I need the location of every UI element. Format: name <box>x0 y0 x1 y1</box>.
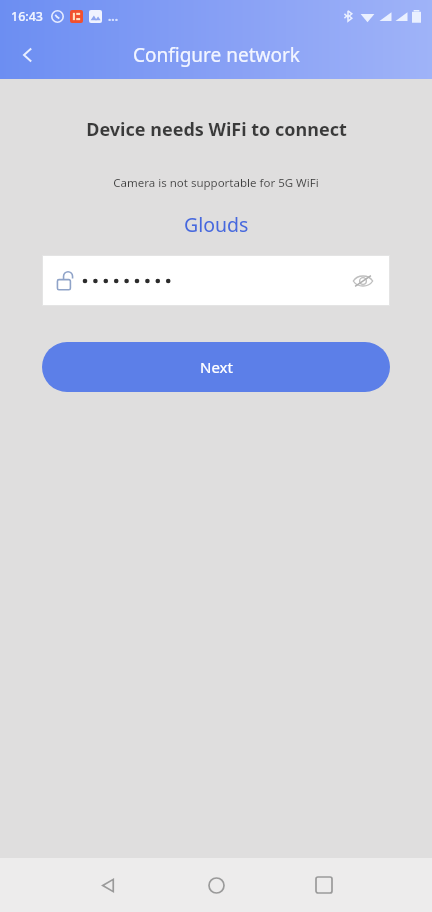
button[interactable]: Next <box>42 342 390 392</box>
staticText: 16:43 <box>11 8 44 25</box>
button[interactable]: Show password <box>42 255 390 306</box>
staticText: Device needs WiFi to connect <box>86 117 347 142</box>
staticText: Configure network <box>133 42 300 68</box>
staticText: ... <box>108 8 119 24</box>
staticText: Next <box>200 357 233 377</box>
staticText: Camera is not supportable for 5G WiFi <box>113 175 319 191</box>
staticText: Glouds <box>184 211 249 238</box>
button[interactable]: Show password <box>350 268 376 294</box>
button[interactable]: Recent apps <box>270 858 378 912</box>
button[interactable]: Back <box>54 858 162 912</box>
button[interactable]: Back <box>4 31 52 79</box>
button[interactable]: Home <box>162 858 270 912</box>
